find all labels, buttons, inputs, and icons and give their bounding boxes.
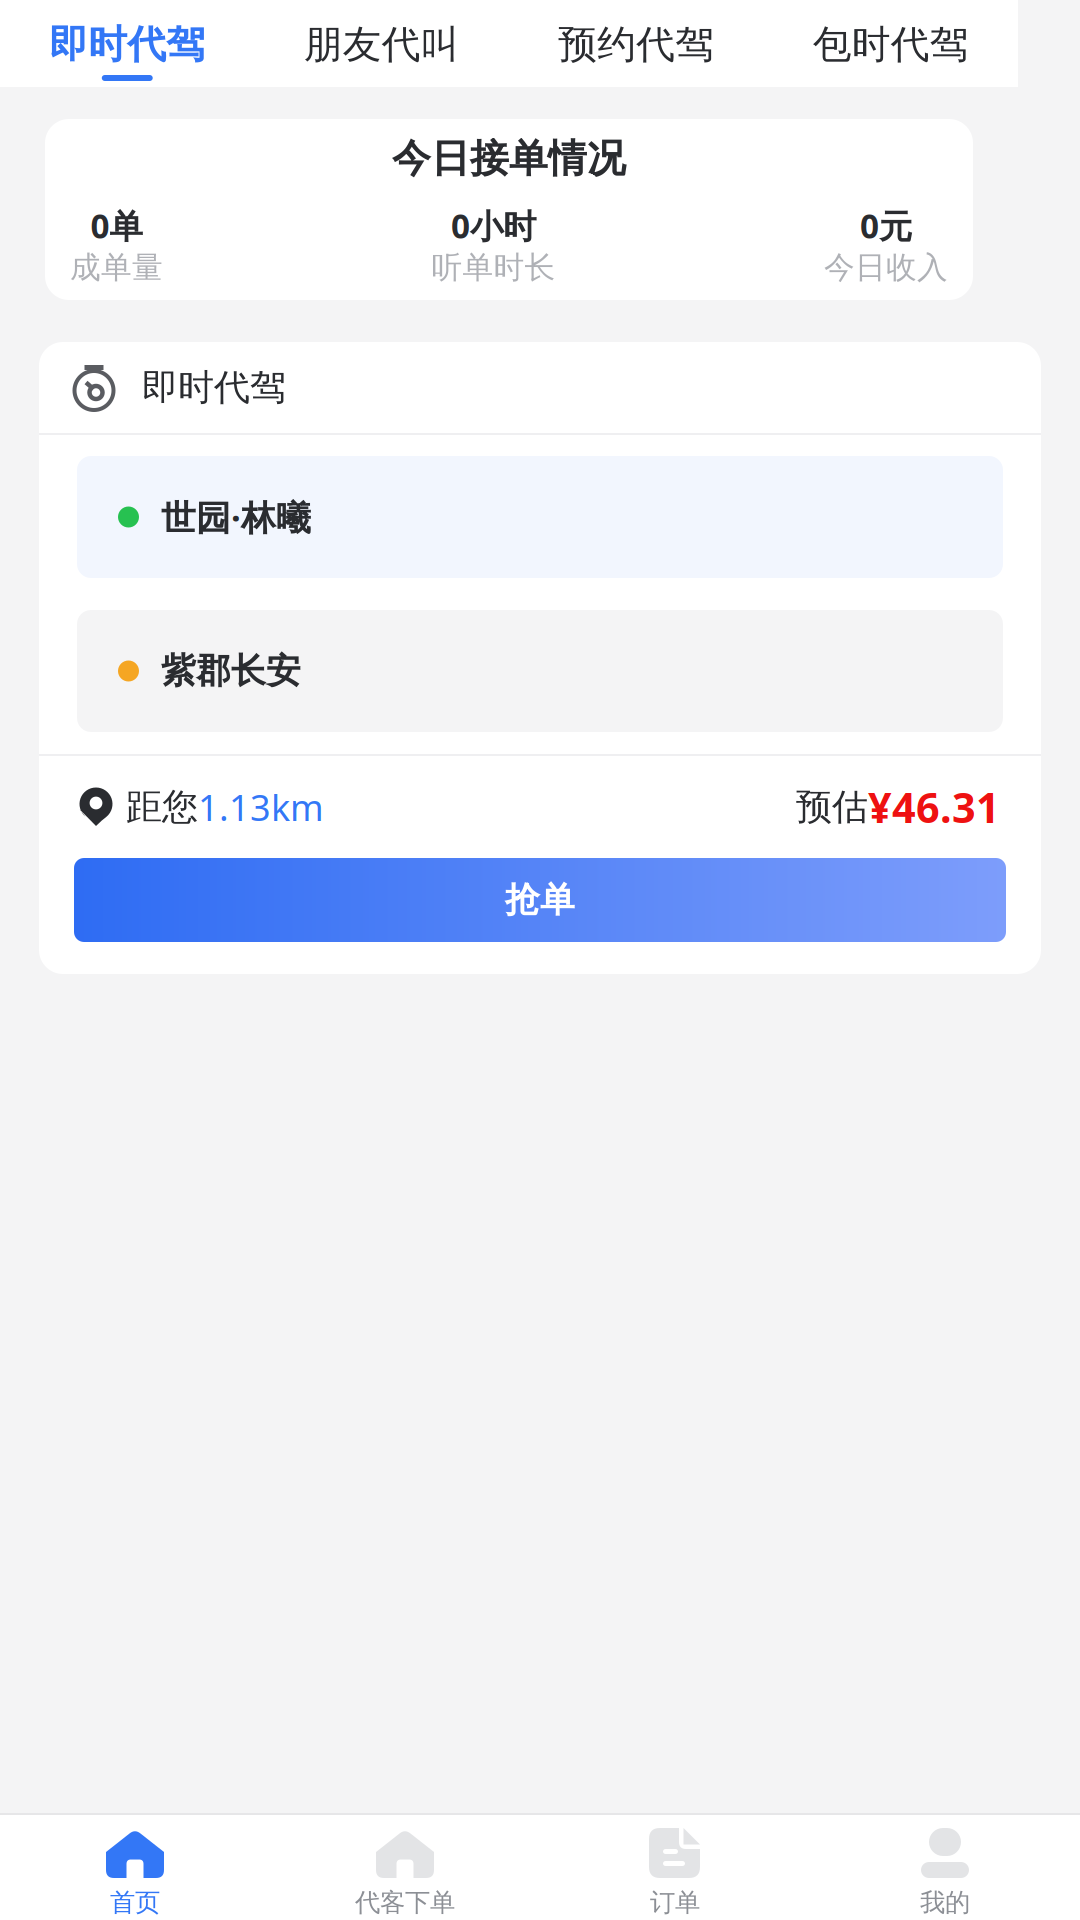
staticText: 朋友代叫	[304, 21, 460, 68]
button[interactable]: 我的	[810, 1815, 1080, 1920]
staticText: ¥46.31	[868, 780, 1000, 834]
staticText: 预约代驾	[558, 21, 714, 68]
staticText: 代客下单	[355, 1887, 455, 1918]
staticText: 0小时	[451, 203, 536, 248]
button[interactable]: 首页	[0, 1815, 270, 1920]
button[interactable]: 抢单	[74, 858, 1006, 942]
button[interactable]: 朋友代叫	[254, 0, 509, 87]
staticText: 我的	[920, 1887, 970, 1918]
staticText: 今日接单情况	[392, 135, 626, 182]
button[interactable]: 预约代驾	[509, 0, 763, 87]
staticText: 即时代驾	[49, 21, 205, 68]
staticText: 成单量	[70, 249, 163, 286]
staticText: 距您	[126, 785, 198, 829]
staticText: 0元	[860, 203, 912, 248]
staticText: 0单	[90, 203, 142, 248]
staticText: 预估	[796, 785, 868, 829]
staticText: 包时代驾	[813, 21, 969, 68]
staticText: 世园·林曦	[161, 494, 311, 540]
button[interactable]: 订单	[540, 1815, 810, 1920]
button[interactable]: 即时代驾	[0, 0, 254, 87]
button[interactable]: 包时代驾	[763, 0, 1018, 87]
staticText: 订单	[650, 1887, 700, 1918]
staticText: 抢单	[505, 879, 575, 921]
staticText: 听单时长	[431, 249, 555, 286]
staticText: 1.13km	[198, 783, 324, 831]
staticText: 今日收入	[824, 249, 948, 286]
staticText: 即时代驾	[142, 365, 286, 410]
button[interactable]: 代客下单	[270, 1815, 540, 1920]
staticText: 首页	[110, 1887, 160, 1918]
staticText: 紫郡长安	[161, 650, 301, 692]
